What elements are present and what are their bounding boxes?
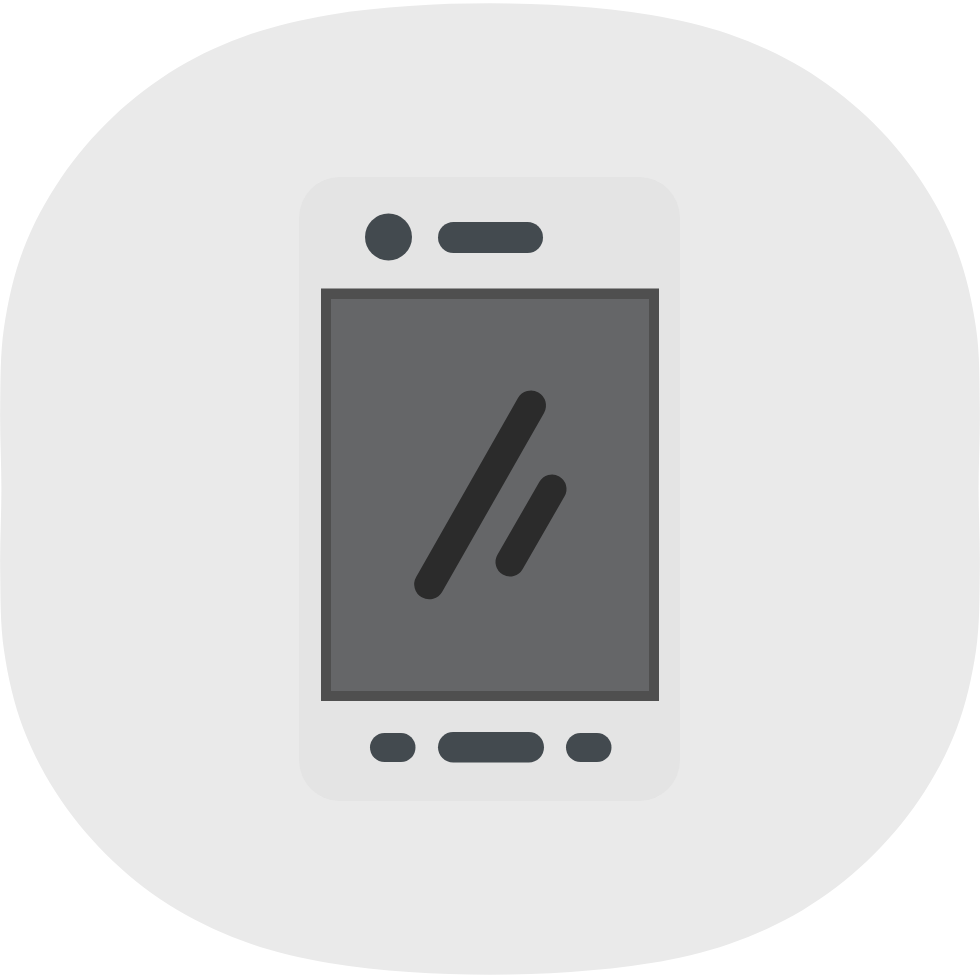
button[interactable]: Smartphone application icon [0,0,980,980]
